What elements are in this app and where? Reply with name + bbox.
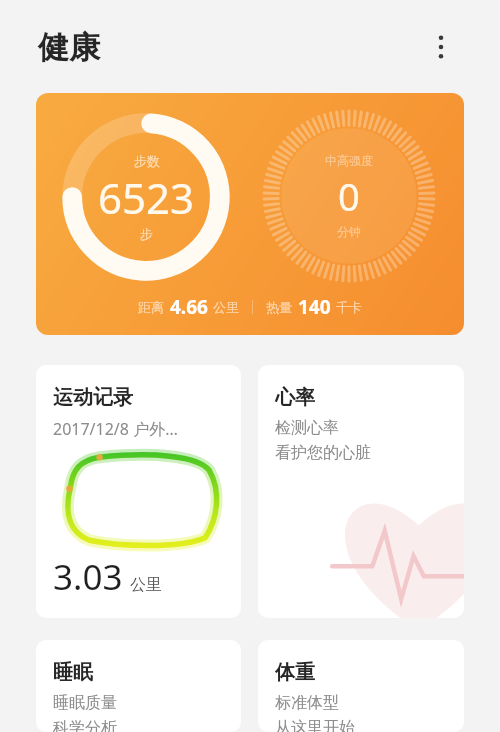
staticText: 看护您的心脏	[275, 443, 371, 463]
staticText: 心率	[275, 385, 315, 410]
staticText: 公里	[213, 299, 239, 315]
staticText: 140	[298, 294, 331, 320]
button[interactable]: 步数	[36, 93, 464, 335]
staticText: 4.66	[170, 294, 208, 320]
staticText: 科学分析	[53, 718, 117, 732]
button[interactable]: 心率	[258, 365, 464, 618]
button[interactable]: More options	[423, 29, 459, 65]
staticText: 健康	[38, 28, 100, 67]
button[interactable]: 体重	[258, 640, 464, 732]
staticText: 中高强度	[325, 153, 373, 168]
staticText: 距离	[138, 299, 164, 315]
staticText: 0	[338, 170, 360, 222]
staticText: 睡眠	[53, 660, 93, 685]
staticText: 检测心率	[275, 418, 339, 438]
staticText: 公里	[130, 575, 162, 595]
staticText: 睡眠质量	[53, 693, 117, 713]
staticText: 2017/12/8 户外…	[53, 418, 178, 440]
staticText: 步	[140, 226, 153, 242]
staticText: 从这里开始	[275, 718, 355, 732]
staticText: 千卡	[336, 299, 362, 315]
staticText: 标准体型	[275, 693, 339, 713]
staticText: 3.03	[53, 553, 123, 601]
staticText: 体重	[275, 660, 315, 685]
button[interactable]: 睡眠	[36, 640, 241, 732]
button[interactable]: 运动记录	[36, 365, 241, 618]
staticText: 分钟	[337, 224, 361, 239]
staticText: 步数	[134, 153, 160, 169]
staticText: 热量	[266, 299, 292, 315]
staticText: 运动记录	[53, 385, 133, 410]
staticText: 6523	[98, 169, 195, 226]
